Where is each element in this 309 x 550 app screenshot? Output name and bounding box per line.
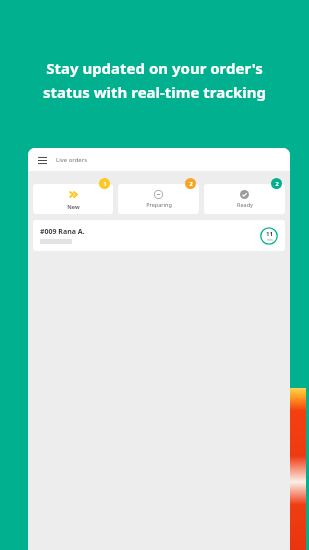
staticText: 2: [189, 180, 193, 187]
button[interactable]: #009 Rana A.: [33, 220, 285, 251]
button[interactable]: Ready: [204, 184, 285, 214]
staticText: New: [67, 203, 80, 210]
button[interactable]: Preparing: [118, 184, 199, 214]
staticText: 11: [266, 230, 273, 238]
staticText: Ready: [237, 201, 253, 208]
staticText: Stay updated on your order's: [46, 58, 263, 78]
button[interactable]: New: [33, 184, 113, 214]
staticText: Live orders: [56, 156, 88, 164]
button[interactable]: Open navigation menu: [35, 153, 49, 167]
staticText: 2: [275, 180, 279, 187]
staticText: status with real-time tracking: [43, 82, 266, 102]
staticText: min: [267, 238, 273, 242]
staticText: Preparing: [146, 201, 172, 208]
staticText: 1: [103, 180, 107, 187]
staticText: #009 Rana A.: [40, 227, 85, 237]
